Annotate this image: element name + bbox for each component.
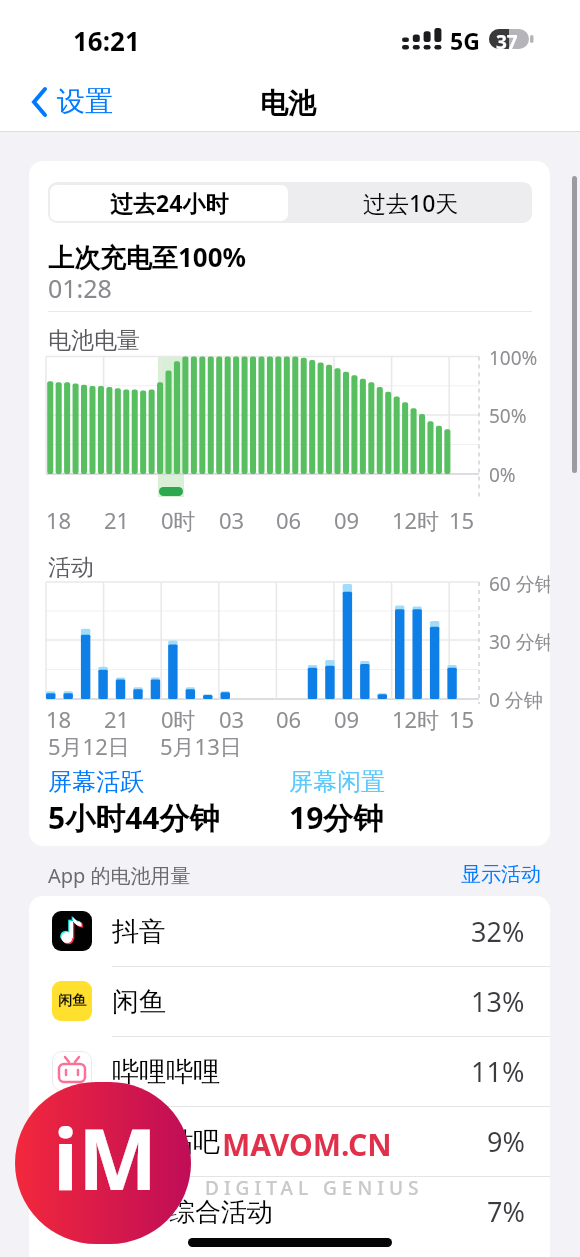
button[interactable]: 综合活动 xyxy=(29,1176,550,1246)
staticText: 15 xyxy=(449,704,475,734)
staticText: 18 xyxy=(46,704,72,734)
staticText: 11% xyxy=(471,1053,525,1090)
staticText: 0% xyxy=(489,462,516,488)
staticText: 09 xyxy=(334,505,360,535)
staticText: 06 xyxy=(276,505,302,535)
staticText: 0 分钟 xyxy=(489,687,543,713)
staticText: 活动 xyxy=(48,553,94,582)
staticText: 12时 xyxy=(392,505,440,535)
button[interactable]: 过去24小时 xyxy=(48,182,532,223)
staticText: 0时 xyxy=(161,505,196,535)
staticText: 0时 xyxy=(161,704,196,734)
staticText: 5月13日 xyxy=(160,731,242,761)
staticText: 上次充电至100% xyxy=(48,239,247,275)
button[interactable]: 抖音 xyxy=(29,896,550,966)
staticText: 12时 xyxy=(392,704,440,734)
staticText: 37 xyxy=(496,29,518,55)
staticText: 电池电量 xyxy=(48,326,140,355)
staticText: 闲鱼 xyxy=(58,992,86,1010)
staticText: 50% xyxy=(489,403,527,429)
staticText: iM xyxy=(53,1100,158,1214)
button[interactable]: 显示活动 xyxy=(461,862,541,887)
staticText: 百度贴吧 xyxy=(112,1125,220,1159)
staticText: 15 xyxy=(449,505,475,535)
staticText: 电池 xyxy=(260,86,316,121)
staticText: 21 xyxy=(104,704,130,734)
staticText: 18 xyxy=(46,505,72,535)
button[interactable]: 设置 xyxy=(31,84,113,119)
staticText: MAVOM.CN xyxy=(222,1124,392,1165)
staticText: 19分钟 xyxy=(289,797,384,838)
staticText: 06 xyxy=(276,704,302,734)
staticText: 哔哩哔哩 xyxy=(112,1055,220,1089)
button[interactable]: 百度贴吧 xyxy=(29,1106,550,1176)
staticText: 综合活动 xyxy=(169,1196,273,1229)
staticText: 09 xyxy=(334,704,360,734)
staticText: 03 xyxy=(219,704,245,734)
staticText: 抖音 xyxy=(112,915,166,949)
staticText: 5小时44分钟 xyxy=(48,797,220,838)
staticText: 32% xyxy=(471,913,525,950)
staticText: 5月12日 xyxy=(48,731,130,761)
staticText: 闲鱼 xyxy=(112,985,166,1019)
staticText: 5G xyxy=(450,25,480,56)
staticText: 屏幕闲置 xyxy=(289,767,385,797)
staticText: 13% xyxy=(471,983,525,1020)
staticText: 01:28 xyxy=(48,271,112,305)
staticText: 03 xyxy=(219,505,245,535)
staticText: 屏幕活跃 xyxy=(48,767,144,797)
staticText: 9% xyxy=(487,1123,525,1160)
staticText: 7% xyxy=(487,1193,525,1230)
button[interactable]: 哔哩哔哩 xyxy=(29,1036,550,1106)
button[interactable]: 闲鱼 xyxy=(29,966,550,1036)
button[interactable]: 过去10天 xyxy=(290,182,532,223)
staticText: 100% xyxy=(489,345,538,371)
staticText: 过去10天 xyxy=(363,187,459,218)
staticText: 16:21 xyxy=(73,23,140,58)
staticText: 60 分钟 xyxy=(489,571,550,597)
staticText: App 的电池用量 xyxy=(48,862,191,889)
staticText: DIGITAL GENIUS xyxy=(205,1175,424,1201)
staticText: 过去24小时 xyxy=(110,187,229,218)
staticText: 30 分钟 xyxy=(489,629,550,655)
staticText: 设置 xyxy=(57,84,113,119)
staticText: 21 xyxy=(104,505,130,535)
